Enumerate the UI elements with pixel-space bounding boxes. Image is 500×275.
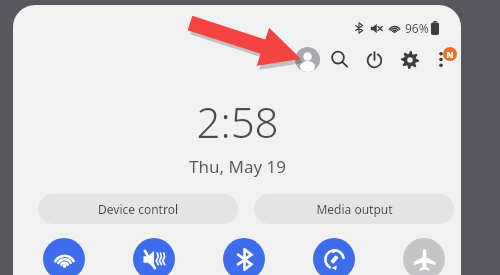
button[interactable]: More options — [431, 47, 456, 72]
button[interactable]: Media output — [254, 194, 454, 224]
button[interactable]: Account — [295, 47, 320, 72]
button[interactable]: Sound mode — [133, 238, 175, 275]
button[interactable]: Device control — [38, 194, 238, 224]
button[interactable]: Auto rotate — [313, 238, 355, 275]
button[interactable]: Search — [327, 47, 352, 72]
staticText: 96% — [405, 20, 429, 36]
staticText: N — [446, 48, 454, 60]
staticText: Thu, May 19 — [189, 155, 286, 178]
button[interactable]: Settings — [397, 47, 422, 72]
button[interactable]: Bluetooth — [223, 238, 265, 275]
button[interactable]: Power — [362, 47, 387, 72]
button[interactable]: Wi-Fi — [43, 238, 85, 275]
button[interactable]: Airplane mode — [403, 238, 445, 275]
staticText: Device control — [98, 201, 178, 217]
staticText: Media output — [316, 201, 393, 217]
staticText: 2:58 — [196, 93, 279, 150]
